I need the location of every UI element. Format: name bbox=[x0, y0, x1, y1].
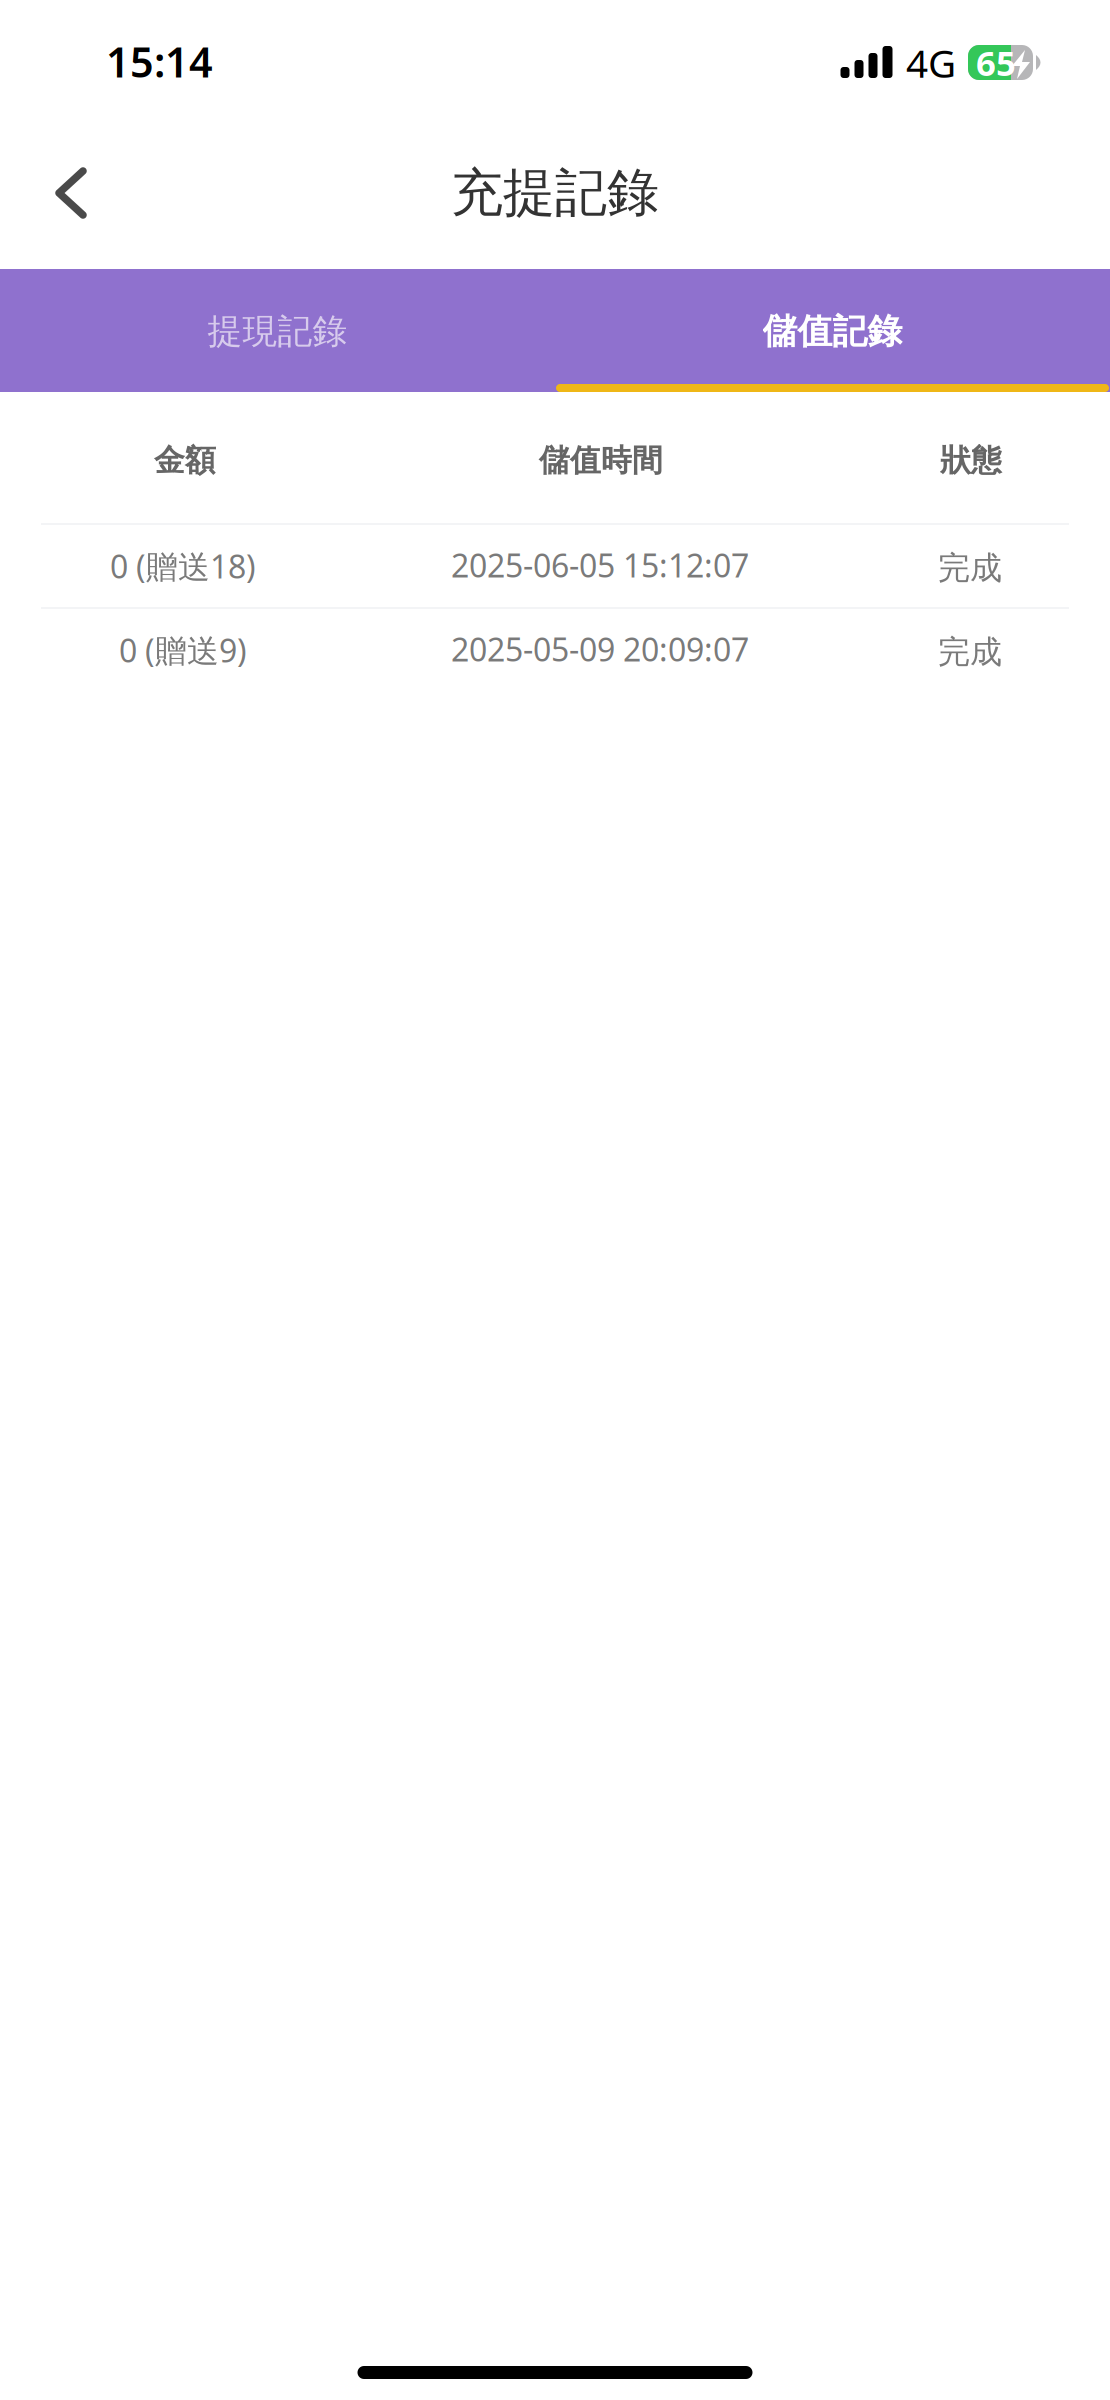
button[interactable]: Back bbox=[11, 133, 131, 253]
staticText: 0 (贈送9) bbox=[119, 629, 247, 671]
staticText: 2025-06-05 15:12:07 bbox=[451, 544, 749, 586]
staticText: 2025-05-09 20:09:07 bbox=[451, 628, 749, 670]
staticText: 15:14 bbox=[106, 34, 213, 89]
staticText: 提現記錄 bbox=[207, 310, 347, 353]
staticText: 充提記錄 bbox=[451, 161, 659, 225]
staticText: 儲值記錄 bbox=[762, 310, 902, 353]
staticText: 完成 bbox=[938, 632, 1002, 672]
staticText: 完成 bbox=[938, 548, 1002, 588]
staticText: 金額 bbox=[154, 442, 216, 479]
staticText: 狀態 bbox=[940, 442, 1002, 479]
button[interactable]: 提現記錄 bbox=[0, 270, 555, 393]
staticText: 65 bbox=[976, 39, 1016, 85]
staticText: 4G bbox=[906, 37, 956, 88]
staticText: 儲值時間 bbox=[539, 442, 663, 479]
staticText: 0 (贈送18) bbox=[110, 545, 256, 587]
button[interactable]: 儲值記錄 bbox=[555, 270, 1110, 393]
